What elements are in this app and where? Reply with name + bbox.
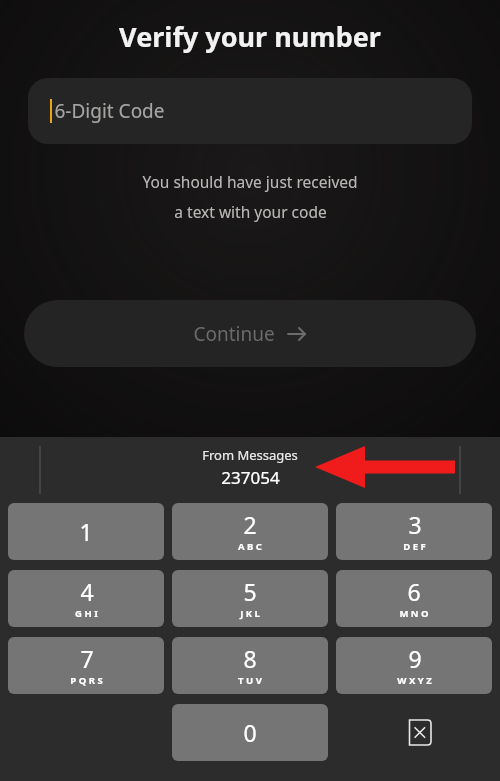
staticText: 3 — [408, 509, 422, 540]
button[interactable]: 0 — [172, 704, 328, 761]
button[interactable]: 9 — [336, 637, 492, 694]
staticText: 6-Digit Code — [54, 98, 165, 124]
staticText: 6 — [407, 576, 421, 607]
staticText: W X Y Z — [397, 674, 432, 687]
button[interactable]: 6-Digit Code — [28, 78, 472, 144]
staticText: 0 — [243, 717, 257, 748]
button[interactable]: 3 — [336, 503, 492, 560]
staticText: A B C — [238, 540, 262, 553]
staticText: 1 — [79, 516, 93, 547]
button[interactable]: 7 — [8, 637, 164, 694]
staticText: M N O — [399, 607, 429, 620]
button[interactable]: 4 — [8, 570, 164, 627]
staticText: 237054 — [221, 466, 280, 489]
staticText: 5 — [243, 576, 257, 607]
staticText: J K L — [240, 607, 260, 620]
staticText: Continue — [193, 321, 275, 347]
staticText: 4 — [80, 576, 94, 607]
button[interactable]: 5 — [172, 570, 328, 627]
staticText: 8 — [243, 643, 257, 674]
staticText: Verify your number — [119, 18, 381, 55]
button[interactable]: 1 — [8, 503, 164, 560]
staticText: a text with your code — [174, 201, 327, 222]
staticText: T U V — [238, 674, 262, 687]
staticText: 9 — [408, 643, 422, 674]
button[interactable]: From Messages — [0, 437, 500, 489]
button[interactable]: 6 — [336, 570, 492, 627]
staticText: P Q R S — [70, 674, 103, 687]
staticText: 2 — [243, 509, 257, 540]
staticText: D E F — [403, 540, 426, 553]
staticText: 7 — [80, 643, 94, 674]
staticText: You should have just received — [142, 171, 358, 192]
button[interactable]: Backspace — [336, 704, 492, 761]
button[interactable]: Continue — [24, 300, 476, 367]
staticText: From Messages — [202, 446, 298, 464]
button[interactable]: 8 — [172, 637, 328, 694]
button[interactable]: 2 — [172, 503, 328, 560]
staticText: G H I — [75, 607, 98, 620]
